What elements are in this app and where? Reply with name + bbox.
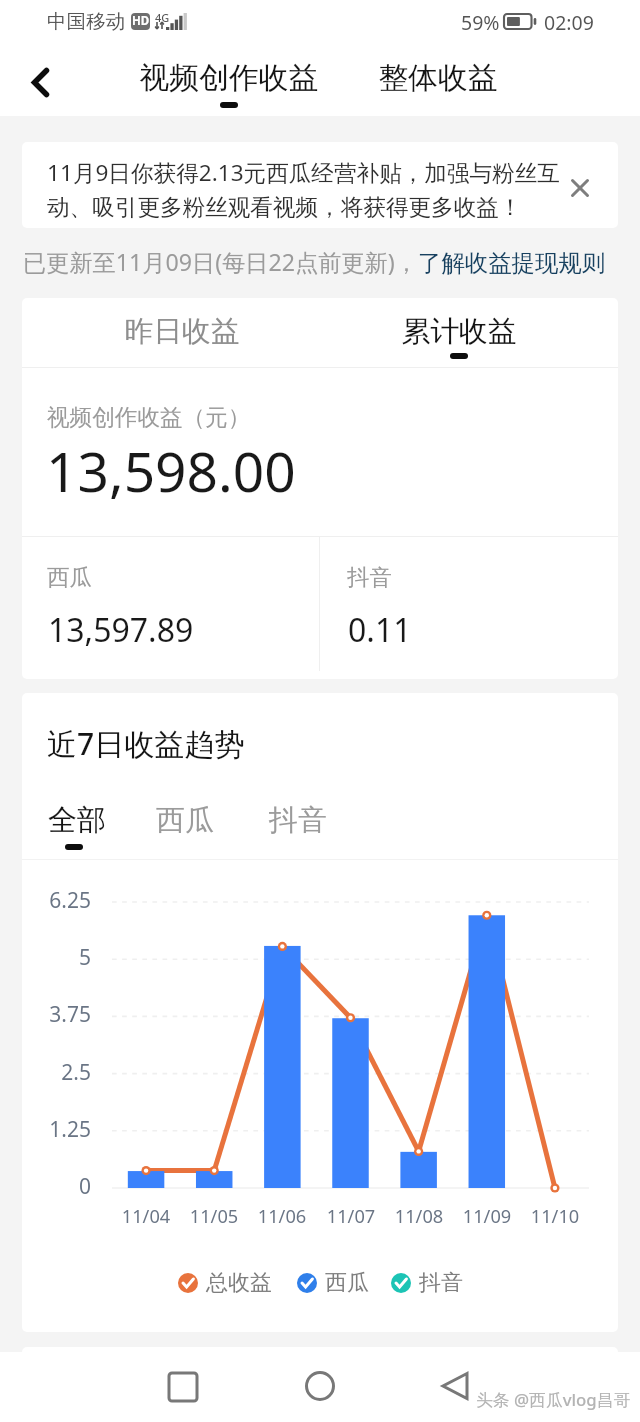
staticText: 累计收益	[310, 313, 608, 349]
button[interactable]: Back	[16, 58, 64, 106]
staticText: 11/09	[453, 1204, 521, 1229]
staticText: 西瓜	[156, 802, 214, 839]
staticText: 近7日收益趋势	[47, 723, 245, 764]
button[interactable]: 抖音	[269, 796, 327, 856]
button[interactable]: 西瓜	[156, 796, 214, 856]
staticText: 全部	[48, 802, 106, 839]
staticText: 2.5	[22, 1058, 91, 1087]
staticText: 6.25	[22, 886, 91, 915]
staticText: 11/04	[112, 1204, 180, 1229]
staticText: 视频创作收益	[131, 59, 327, 97]
button[interactable]: Close	[558, 164, 602, 208]
staticText: 西瓜	[325, 1269, 369, 1297]
staticText: 抖音	[347, 563, 392, 591]
staticText: 13,597.89	[48, 608, 194, 652]
staticText: HD	[132, 13, 150, 29]
button[interactable]: 11月9日你获得2.13元西瓜经营补贴，加强与粉丝互动、吸引更多粉丝观看视频，将…	[22, 142, 618, 228]
button[interactable]: 整体收益	[370, 48, 506, 116]
button[interactable]: 昨日收益	[33, 298, 331, 367]
staticText: 昨日收益	[33, 313, 331, 349]
staticText: 中国移动	[47, 9, 125, 34]
staticText: 0	[22, 1172, 91, 1201]
staticText: 11/10	[521, 1204, 589, 1229]
staticText: 已更新至11月09日(每日22点前更新)，	[23, 246, 418, 278]
staticText: 抖音	[419, 1269, 463, 1297]
staticText: 抖音	[269, 802, 327, 839]
button[interactable]: 西瓜	[297, 1268, 369, 1298]
staticText: 4G	[155, 10, 170, 25]
staticText: 11月9日你获得2.13元西瓜经营补贴，加强与粉丝互动、吸引更多粉丝观看视频，将…	[47, 157, 563, 222]
button[interactable]: Back	[432, 1362, 480, 1410]
staticText: 0.11	[348, 608, 412, 652]
staticText: 5	[22, 943, 91, 972]
staticText: 11/06	[248, 1204, 316, 1229]
staticText: 西瓜	[47, 563, 92, 591]
button[interactable]: 了解收益提现规则	[418, 248, 606, 277]
button[interactable]: 累计收益	[310, 298, 608, 367]
staticText: 59%	[461, 9, 500, 36]
staticText: 1.25	[22, 1115, 91, 1144]
staticText: 13,598.00	[46, 433, 296, 508]
button[interactable]: 视频创作收益	[131, 48, 327, 116]
staticText: 11/05	[180, 1204, 248, 1229]
button[interactable]: 全部	[48, 796, 106, 856]
staticText: 总收益	[206, 1269, 272, 1297]
staticText: 头条 @西瓜vlog昌哥	[476, 1388, 631, 1411]
button[interactable]: Recents	[159, 1363, 207, 1411]
staticText: 整体收益	[370, 59, 506, 97]
button[interactable]: 抖音	[391, 1268, 463, 1298]
button[interactable]: 总收益	[178, 1268, 272, 1298]
button[interactable]: Home	[296, 1362, 344, 1410]
staticText: 3.75	[22, 1000, 91, 1029]
staticText: 02:09	[544, 9, 594, 36]
staticText: 11/07	[317, 1204, 385, 1229]
staticText: 11/08	[385, 1204, 453, 1229]
staticText: 视频创作收益（元）	[47, 403, 251, 431]
